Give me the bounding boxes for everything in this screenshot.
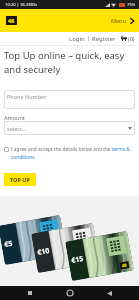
button[interactable]: select... [4, 121, 135, 135]
staticText: 48 [88, 254, 93, 260]
staticText: Menu [111, 17, 126, 24]
button[interactable]: Phone Number [4, 90, 135, 109]
staticText: I agree and accept the details below and… [11, 146, 135, 160]
button[interactable]: Register [92, 35, 116, 43]
staticText: Top Up online – quick, easy and securely [4, 49, 135, 76]
button[interactable]: Recents [20, 286, 40, 300]
staticText: 10:20 | 36.3KB/s [5, 2, 38, 8]
staticText: 48 [8, 17, 15, 24]
staticText: Amount [4, 114, 25, 121]
staticText: €15 [71, 254, 85, 266]
button[interactable]: I agree and accept the details below and… [4, 146, 135, 160]
staticText: 48 [55, 246, 60, 252]
staticText: TOP UP [10, 176, 30, 183]
staticText: 48 [122, 262, 127, 268]
button[interactable]: Login [69, 35, 85, 43]
button[interactable]: Back [99, 286, 119, 300]
button[interactable]: TOP UP [4, 173, 36, 186]
staticText: 75% [127, 2, 136, 8]
staticText: €5 [4, 238, 14, 250]
button[interactable]: Cart [121, 35, 135, 42]
staticText: select... [7, 125, 27, 132]
staticText: (0) [128, 35, 135, 42]
button[interactable]: Menu [111, 17, 134, 24]
staticText: €10 [37, 246, 51, 258]
button[interactable]: Home [6, 16, 17, 25]
button[interactable]: Home [60, 286, 80, 300]
staticText: Phone Number [7, 93, 47, 100]
